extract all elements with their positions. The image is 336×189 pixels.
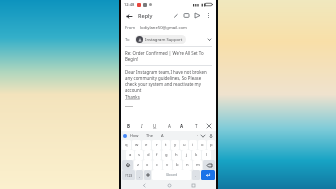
staticText: y: [174, 142, 177, 148]
staticText: w: [135, 142, 139, 148]
button[interactable]: r: [152, 140, 161, 150]
staticText: From: [125, 25, 136, 31]
button[interactable]: T: [192, 122, 200, 130]
button[interactable]: ?123: [122, 170, 135, 180]
button[interactable]: e: [142, 140, 151, 150]
staticText: c: [156, 162, 159, 168]
button[interactable]: z: [134, 160, 142, 170]
button[interactable]: Recents: [191, 183, 195, 187]
button[interactable]: Dear Instagram team,I have not broken an…: [125, 69, 212, 107]
button[interactable]: y: [171, 140, 179, 150]
button[interactable]: h: [172, 150, 181, 160]
staticText: l: [206, 152, 208, 158]
button[interactable]: How: [130, 133, 139, 138]
button[interactable]: Space: [152, 170, 191, 180]
button[interactable]: A: [165, 122, 173, 130]
staticText: x: [146, 162, 149, 168]
staticText: m: [196, 162, 200, 168]
staticText: g: [165, 152, 168, 158]
button[interactable]: f: [153, 150, 161, 160]
staticText: v: [166, 162, 169, 168]
staticText: f: [156, 152, 158, 158]
button[interactable]: m: [193, 160, 202, 170]
button[interactable]: More options: [204, 11, 213, 20]
button[interactable]: x: [143, 160, 152, 170]
button[interactable]: Home: [167, 183, 171, 187]
staticText: h: [175, 152, 178, 158]
button[interactable]: i: [189, 140, 197, 150]
staticText: t: [165, 142, 167, 148]
staticText: d: [147, 152, 150, 158]
staticText: Instagram Support: [145, 37, 183, 43]
button[interactable]: o: [198, 140, 206, 150]
button[interactable]: .: [192, 170, 200, 180]
button[interactable]: Schedule send: [182, 11, 191, 20]
staticText: U: [153, 123, 157, 129]
staticText: A: [180, 123, 184, 129]
staticText: lodiylane50@gmail.com: [140, 25, 187, 31]
button[interactable]: t: [162, 140, 170, 150]
staticText: ?123: [125, 173, 133, 178]
staticText: q: [125, 142, 128, 148]
staticText: b: [176, 162, 179, 168]
button[interactable]: w: [132, 140, 141, 150]
button[interactable]: I: [138, 122, 146, 130]
button[interactable]: Settings: [144, 170, 151, 180]
staticText: a: [129, 152, 132, 158]
button[interactable]: From: [125, 22, 212, 33]
staticText: n: [186, 162, 189, 168]
button[interactable]: k: [192, 150, 201, 160]
button[interactable]: Send: [193, 11, 202, 20]
button[interactable]: n: [183, 160, 192, 170]
button[interactable]: b: [173, 160, 182, 170]
staticText: r: [156, 142, 158, 148]
button[interactable]: l: [202, 150, 211, 160]
button[interactable]: d: [144, 150, 152, 160]
button[interactable]: Back: [142, 183, 146, 187]
staticText: u: [183, 142, 186, 148]
staticText: Thanks: [125, 94, 140, 100]
staticText: k: [195, 152, 198, 158]
staticText: Gboard: [166, 173, 178, 177]
staticText: j: [186, 152, 188, 158]
staticText: i: [192, 142, 194, 148]
button[interactable]: To: [125, 33, 212, 46]
button[interactable]: g: [162, 150, 171, 160]
staticText: e: [145, 142, 148, 148]
staticText: T: [195, 123, 198, 129]
button[interactable]: The: [146, 133, 153, 138]
button[interactable]: A: [178, 122, 186, 130]
staticText: z: [137, 162, 139, 168]
button[interactable]: Close formatting: [205, 122, 213, 130]
staticText: o: [201, 142, 204, 148]
button[interactable]: A: [161, 133, 164, 138]
button[interactable]: u: [180, 140, 188, 150]
button[interactable]: v: [163, 160, 172, 170]
button[interactable]: Enter: [201, 170, 215, 180]
staticText: Re: Order Confirmed | We're All Set To B…: [125, 50, 212, 62]
button[interactable]: q: [122, 140, 131, 150]
staticText: .: [195, 173, 197, 178]
staticText: 12:48: [124, 2, 135, 7]
button[interactable]: Attach file: [171, 11, 180, 20]
button[interactable]: Backspace: [203, 160, 215, 170]
button[interactable]: Emoji: [136, 170, 143, 180]
button[interactable]: Back: [124, 11, 134, 21]
staticText: p: [210, 142, 213, 148]
button[interactable]: a: [126, 150, 134, 160]
button[interactable]: j: [182, 150, 191, 160]
button[interactable]: s: [135, 150, 143, 160]
button[interactable]: Google: [123, 134, 127, 138]
button[interactable]: Re: Order Confirmed | We're All Set To B…: [125, 50, 212, 62]
button[interactable]: U: [151, 122, 159, 130]
staticText: To: [125, 37, 130, 43]
staticText: I: [141, 123, 143, 129]
button[interactable]: p: [207, 140, 215, 150]
button[interactable]: B: [124, 122, 132, 130]
button[interactable]: Shift: [122, 160, 133, 170]
button[interactable]: Voice input: [208, 133, 214, 139]
staticText: Reply: [138, 12, 153, 19]
button[interactable]: c: [153, 160, 162, 170]
staticText: s: [138, 152, 141, 158]
staticText: A: [168, 123, 171, 129]
